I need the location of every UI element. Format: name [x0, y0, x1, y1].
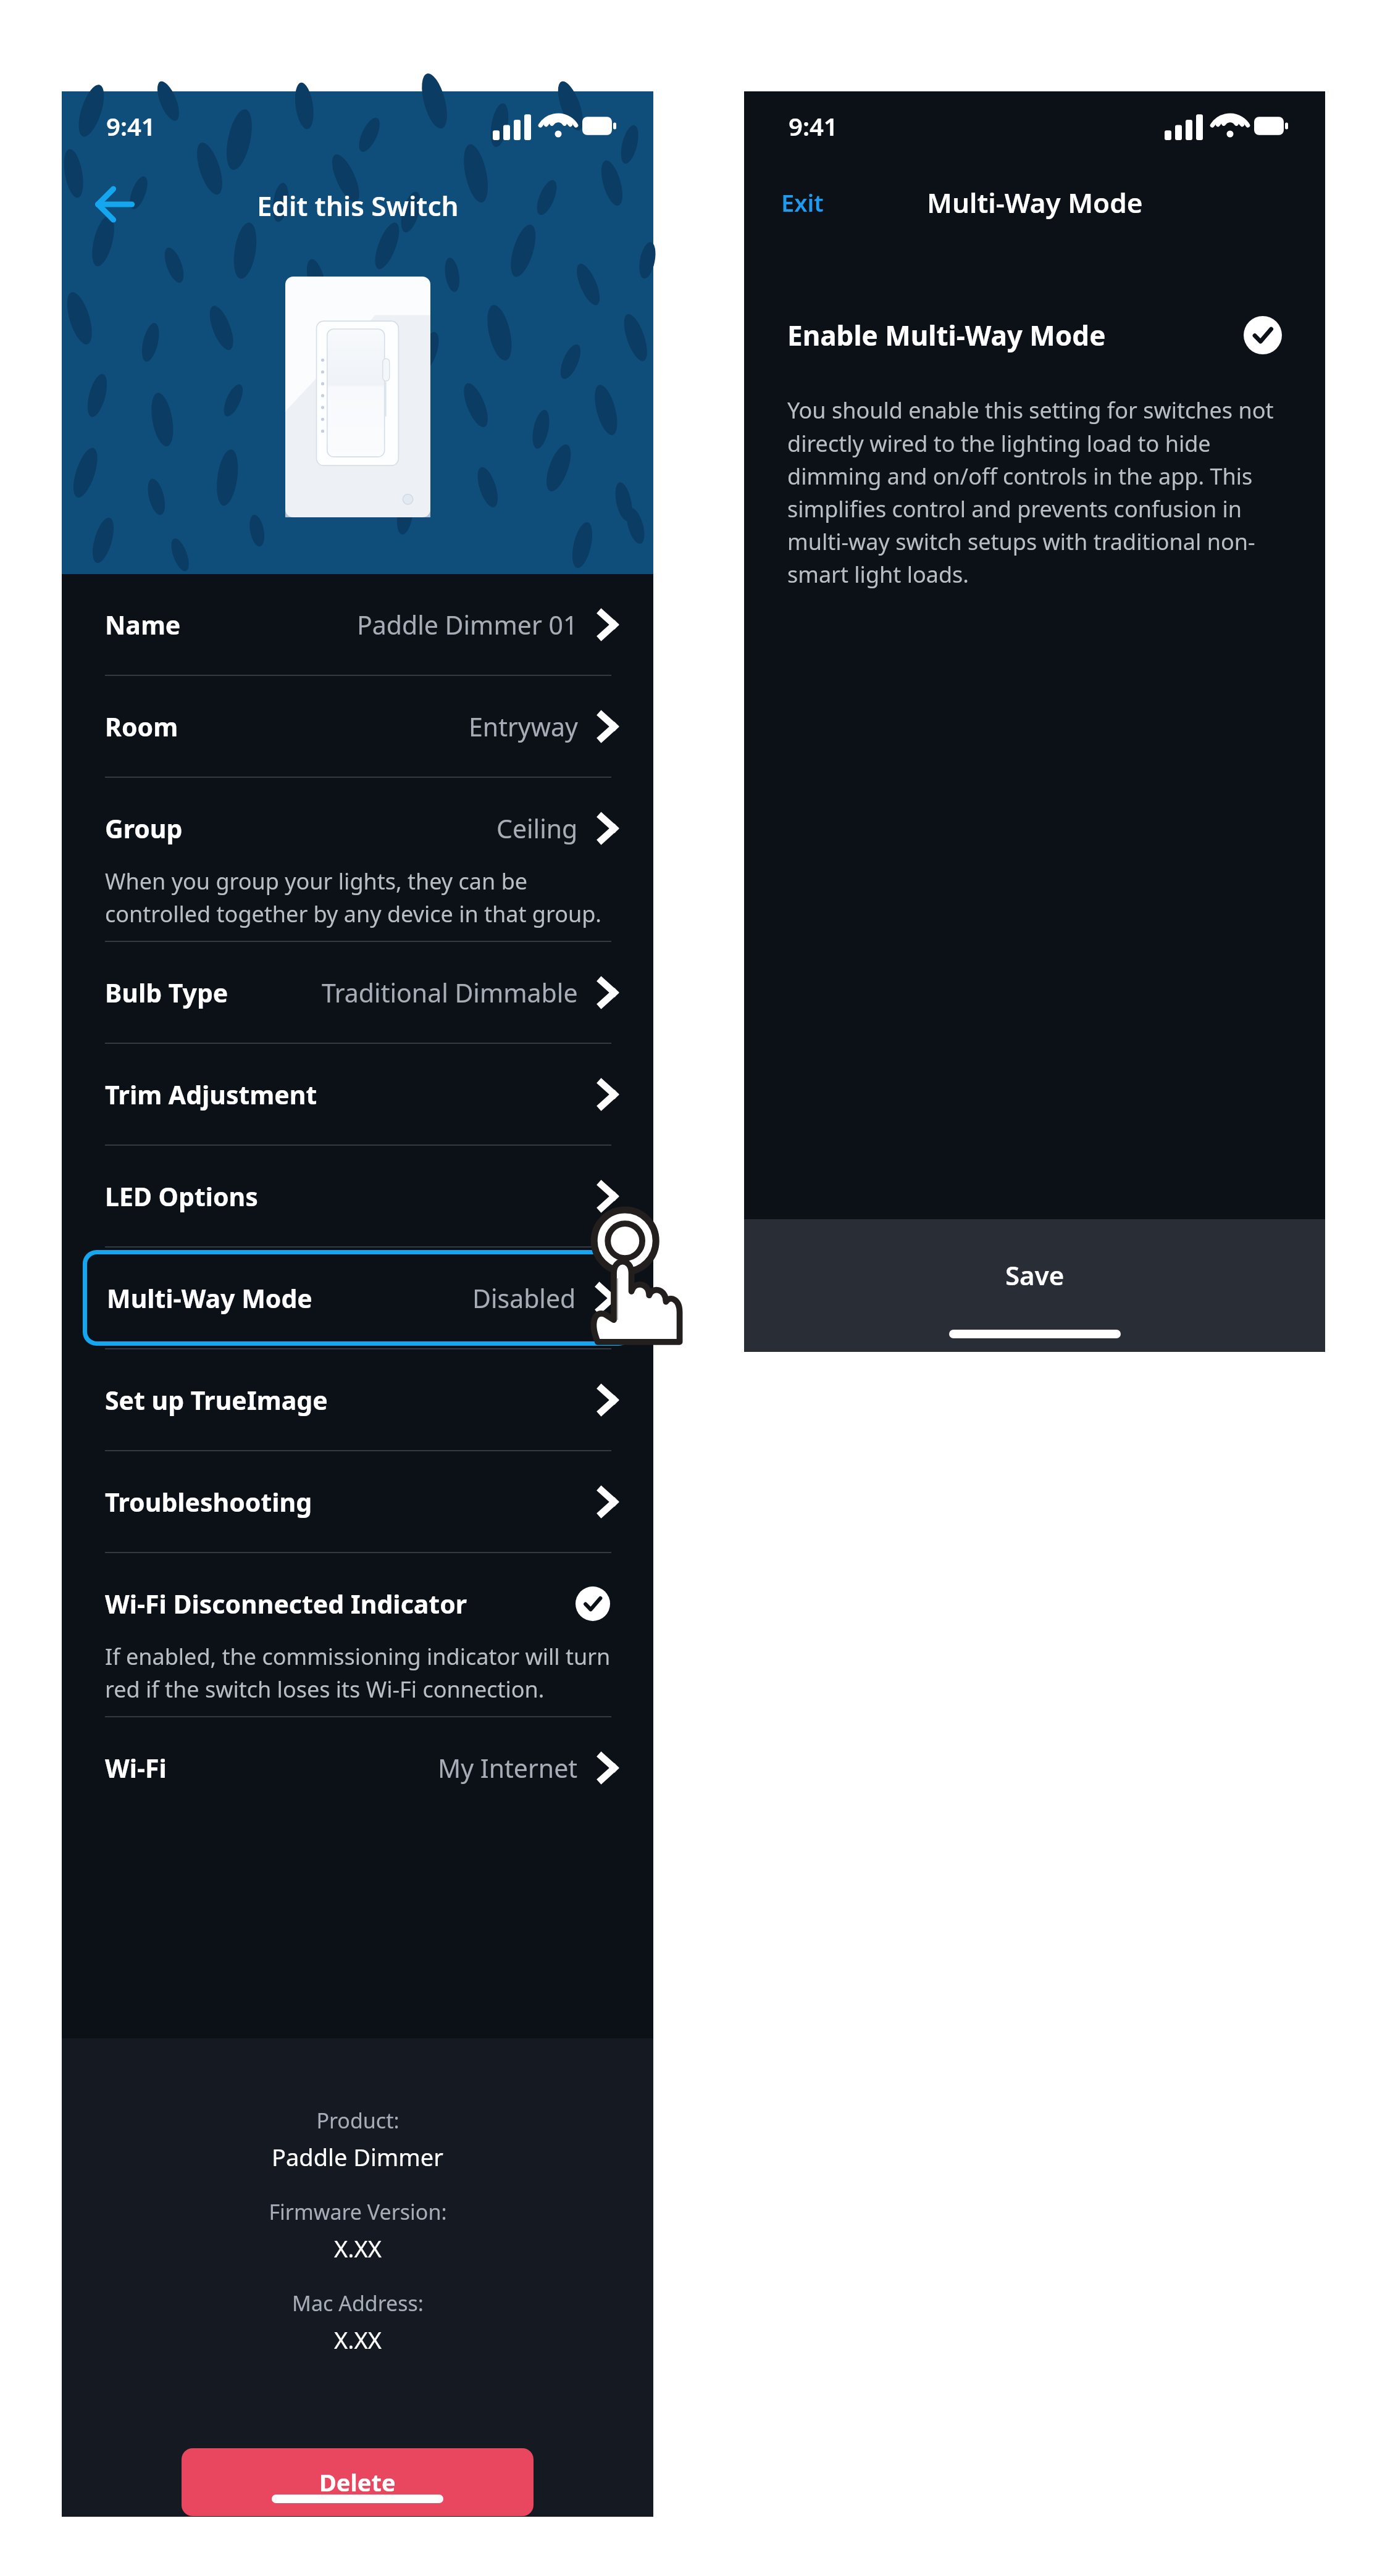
staticText: When you group your lights, they can be …	[105, 866, 616, 928]
staticText: You should enable this setting for switc…	[787, 395, 1282, 589]
staticText: Exit	[781, 186, 824, 219]
staticText: Room	[105, 709, 469, 744]
staticText: Trim Adjustment	[105, 1077, 594, 1112]
staticText: Wi-Fi Disconnected Indicator	[105, 1586, 576, 1621]
staticText: LED Options	[105, 1179, 594, 1214]
button[interactable]: Group	[62, 778, 653, 878]
staticText: Paddle Dimmer 01	[357, 607, 578, 642]
staticText: Delete	[319, 2466, 396, 2498]
button[interactable]: Multi-Way Mode	[87, 1254, 628, 1341]
staticText: Disabled	[472, 1281, 576, 1315]
button[interactable]: Set up TrueImage	[62, 1349, 653, 1450]
staticText: Enable Multi-Way Mode	[787, 317, 1244, 354]
staticText: Set up TrueImage	[105, 1383, 594, 1417]
button[interactable]: Room	[62, 676, 653, 777]
button[interactable]: Delete	[182, 2448, 534, 2516]
button[interactable]: Save	[744, 1219, 1325, 1352]
staticText: Traditional Dimmable	[322, 975, 578, 1010]
staticText: Name	[105, 607, 357, 642]
button[interactable]: Troubleshooting	[62, 1451, 653, 1552]
button[interactable]: Trim Adjustment	[62, 1044, 653, 1144]
staticText: If enabled, the commissioning indicator …	[105, 1641, 616, 1704]
button[interactable]: Wi-Fi	[62, 1717, 653, 1818]
button[interactable]: Enable Multi-Way Mode	[787, 301, 1282, 369]
button[interactable]: Back	[80, 170, 148, 238]
staticText: Entryway	[469, 709, 578, 744]
button[interactable]: Name	[62, 574, 653, 675]
staticText: 9:41	[106, 109, 156, 143]
staticText: My Internet	[438, 1751, 578, 1785]
staticText: Wi-Fi	[105, 1751, 438, 1785]
staticText: Edit this Switch	[257, 187, 459, 224]
button[interactable]: LED Options	[62, 1146, 653, 1246]
staticText: 9:41	[789, 109, 838, 143]
staticText: Ceiling	[496, 811, 578, 846]
button[interactable]: Exit	[781, 186, 824, 219]
staticText: Firmware Version:	[269, 2198, 447, 2226]
staticText: Multi-Way Mode	[927, 184, 1143, 221]
staticText: Mac Address:	[292, 2289, 424, 2317]
staticText: X.XX	[334, 2324, 382, 2356]
staticText: X.XX	[334, 2232, 382, 2264]
staticText: Product:	[316, 2106, 400, 2135]
staticText: Multi-Way Mode	[107, 1281, 472, 1315]
button[interactable]: Wi-Fi Disconnected Indicator	[105, 1553, 610, 1654]
staticText: Troubleshooting	[105, 1485, 594, 1519]
staticText: Save	[1005, 1257, 1065, 1293]
staticText: Bulb Type	[105, 975, 322, 1010]
staticText: Group	[105, 811, 496, 846]
staticText: Paddle Dimmer	[272, 2141, 443, 2173]
button[interactable]: Bulb Type	[62, 942, 653, 1043]
